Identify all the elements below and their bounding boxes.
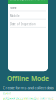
- staticText: Mobile: [10, 14, 20, 18]
- staticText: Date of Inspection: [10, 22, 36, 26]
- staticText: without accessing the internet: [3, 96, 53, 100]
- staticText: Name: [10, 6, 17, 10]
- staticText: Offline Mode: [7, 74, 49, 83]
- staticText: Site Inspection Form: [10, 0, 45, 1]
- staticText: Create forms and collect data even: [2, 85, 53, 96]
